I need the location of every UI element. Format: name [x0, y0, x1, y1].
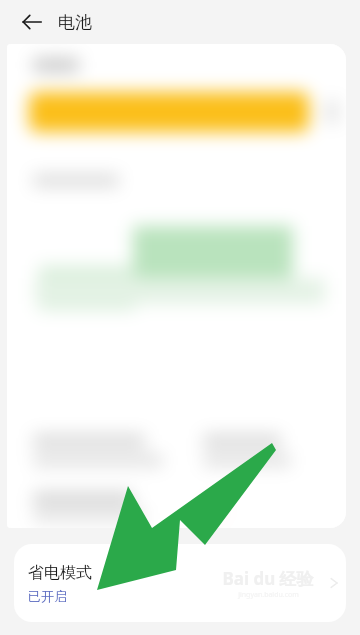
- staticText: Bai du 经验: [222, 567, 314, 590]
- staticText: 已开启: [28, 588, 67, 604]
- button[interactable]: 省电模式: [14, 544, 346, 622]
- staticText: 电池: [58, 12, 92, 33]
- staticText: 省电模式: [28, 563, 92, 583]
- button[interactable]: 返回: [14, 4, 50, 40]
- staticText: jingyan.baidu.com: [238, 590, 299, 600]
